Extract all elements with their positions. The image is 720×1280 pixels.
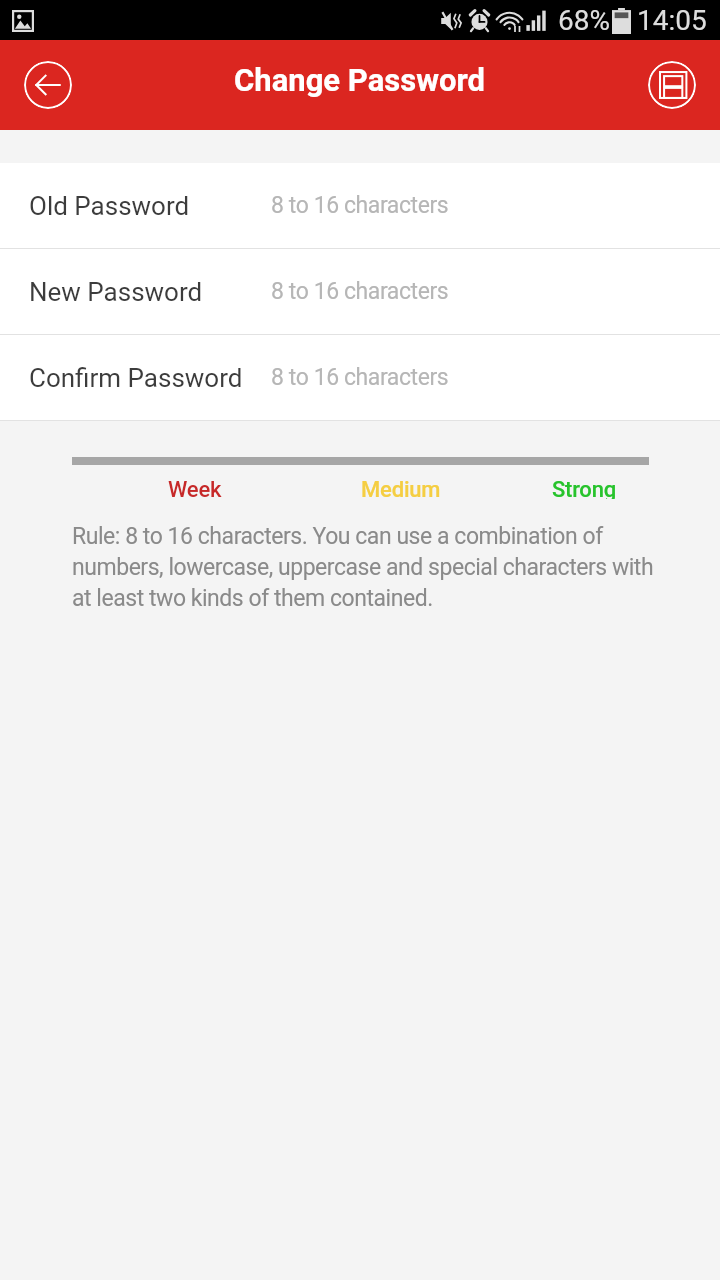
button[interactable]: Save xyxy=(648,61,696,109)
button[interactable]: Back xyxy=(24,61,72,109)
staticText: 8 to 16 characters xyxy=(271,278,449,305)
button[interactable]: Old Password xyxy=(0,163,720,248)
staticText: Medium xyxy=(361,477,441,499)
staticText: Week xyxy=(168,477,222,499)
staticText: Strong xyxy=(552,477,616,499)
staticText: 8 to 16 characters xyxy=(271,192,449,219)
button[interactable]: New Password xyxy=(0,249,720,334)
staticText: 8 to 16 characters xyxy=(271,364,449,391)
staticText: Rule: 8 to 16 characters. You can use a … xyxy=(72,523,662,612)
staticText: 68% xyxy=(558,4,610,37)
button[interactable]: Confirm Password xyxy=(0,335,720,420)
staticText: Change Password xyxy=(234,62,486,98)
staticText: Confirm Password xyxy=(29,363,271,393)
staticText: 14:05 xyxy=(637,4,707,37)
staticText: Old Password xyxy=(29,191,271,221)
staticText: New Password xyxy=(29,277,271,307)
